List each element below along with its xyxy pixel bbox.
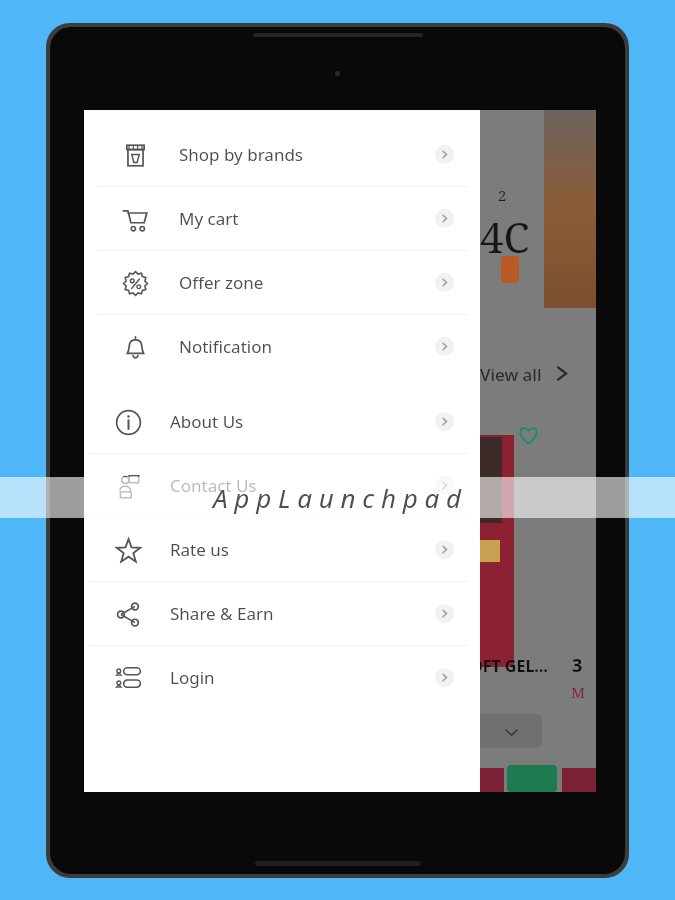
staticText: Offer zone — [179, 271, 264, 294]
button[interactable]: About Us — [90, 390, 468, 453]
button[interactable]: Login — [90, 646, 468, 709]
staticText: Rate us — [170, 538, 229, 561]
button[interactable]: Share & Earn — [90, 582, 468, 645]
staticText: Contact Us — [170, 474, 257, 497]
staticText: About Us — [170, 410, 244, 433]
staticText: M — [571, 682, 586, 702]
button[interactable]: My cart — [97, 187, 468, 250]
button[interactable]: Rate us — [90, 518, 468, 581]
staticText: Login — [170, 666, 215, 689]
staticText: A p p L a u n c h p a d — [213, 480, 462, 515]
staticText: View all — [480, 363, 542, 386]
staticText: Share & Earn — [170, 602, 274, 625]
staticText: My cart — [179, 207, 239, 230]
staticText: 4C — [480, 208, 530, 265]
staticText: Shop by brands — [179, 143, 303, 166]
button[interactable]: Offer zone — [97, 251, 468, 314]
staticText: 2 — [498, 185, 507, 205]
staticText: Notification — [179, 335, 272, 358]
button[interactable]: Contact Us — [90, 454, 468, 517]
button[interactable]: Notification — [97, 315, 468, 378]
staticText: OFT GEL… — [470, 655, 549, 677]
button[interactable]: Shop by brands — [97, 123, 468, 186]
staticText: 3 — [572, 653, 583, 678]
